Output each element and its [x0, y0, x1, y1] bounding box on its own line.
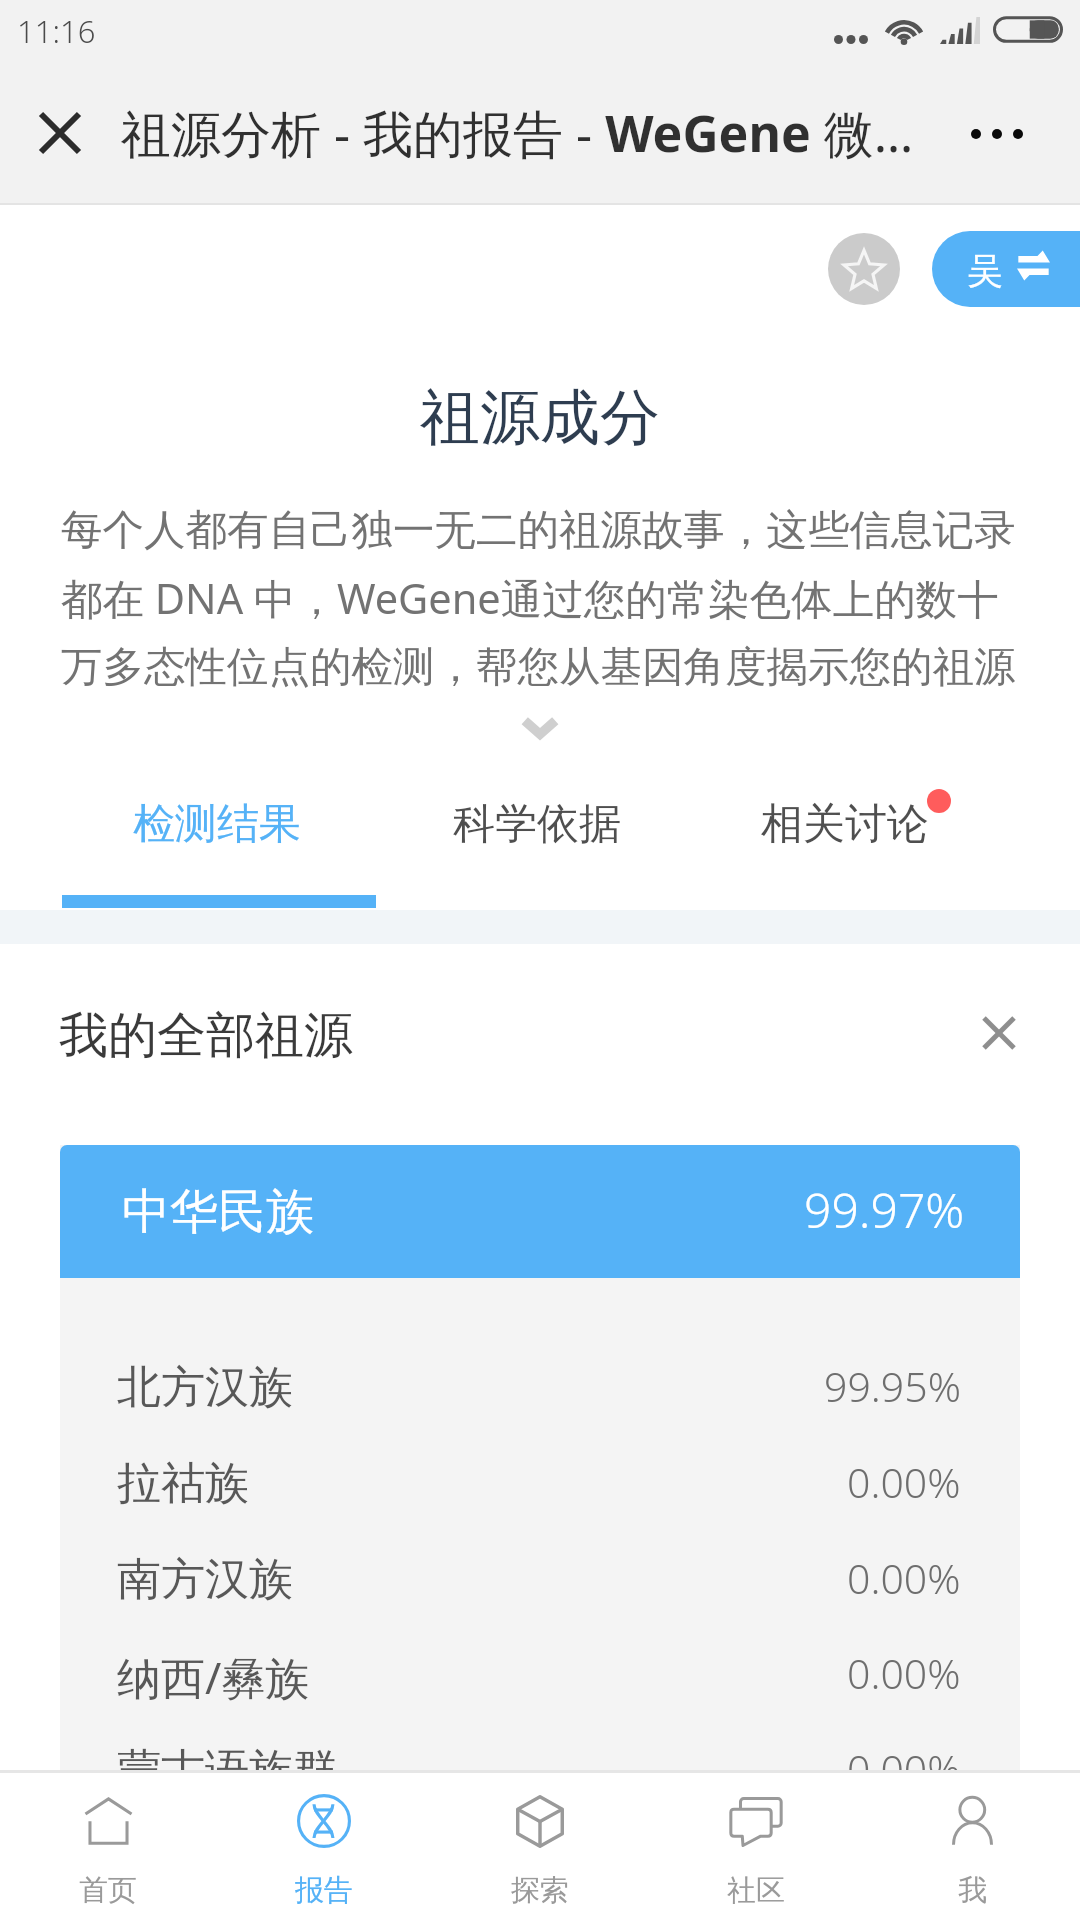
- button[interactable]: 检测结果: [92, 770, 342, 880]
- staticText: 相关讨论: [761, 798, 929, 851]
- button[interactable]: Close: [20, 93, 100, 173]
- button[interactable]: 纳西/彝族: [60, 1625, 1020, 1720]
- staticText: 检测结果: [133, 798, 301, 851]
- staticText: 我的全部祖源: [59, 1005, 353, 1067]
- button[interactable]: 吴: [932, 231, 1080, 307]
- staticText: 99.95%: [824, 1358, 961, 1414]
- staticText: 我: [958, 1872, 987, 1909]
- button[interactable]: Close panel: [954, 988, 1044, 1078]
- button[interactable]: 相关讨论: [720, 770, 970, 880]
- staticText: 纳西/彝族: [117, 1647, 310, 1707]
- staticText: 0.00%: [847, 1550, 961, 1606]
- button[interactable]: 蒙古语族群: [60, 1721, 1020, 1816]
- button[interactable]: 南方汉族: [60, 1530, 1020, 1625]
- staticText: 蒙古语族群: [117, 1743, 337, 1798]
- staticText: 11:16: [17, 10, 96, 52]
- button[interactable]: Favorite: [828, 233, 900, 305]
- staticText: 拉祜族: [117, 1456, 249, 1511]
- button[interactable]: 科学依据: [412, 770, 662, 880]
- button[interactable]: 拉祜族: [60, 1434, 1020, 1529]
- button[interactable]: 我: [864, 1770, 1080, 1920]
- button[interactable]: 探索: [432, 1770, 648, 1920]
- staticText: 探索: [511, 1872, 569, 1909]
- staticText: 0.00%: [847, 1454, 961, 1510]
- button[interactable]: 报告: [216, 1770, 432, 1920]
- staticText: 科学依据: [453, 798, 621, 851]
- staticText: 吴: [967, 248, 1003, 293]
- button[interactable]: Expand description: [490, 695, 590, 759]
- staticText: 0.00%: [847, 1645, 961, 1701]
- staticText: 祖源分析 - 我的报告 - WeGene 微…: [121, 99, 914, 167]
- staticText: 报告: [295, 1872, 353, 1909]
- staticText: 中华民族: [122, 1182, 314, 1242]
- staticText: 北方汉族: [117, 1360, 293, 1415]
- staticText: 99.97%: [804, 1177, 965, 1242]
- button[interactable]: 首页: [0, 1770, 216, 1920]
- staticText: 社区: [727, 1872, 785, 1909]
- staticText: 每个人都有自己独一无二的祖源故事，这些信息记录都在 DNA 中，WeGene通过…: [61, 504, 1023, 693]
- staticText: 0.00%: [847, 1741, 961, 1797]
- button[interactable]: 社区: [648, 1770, 864, 1920]
- staticText: 祖源成分: [420, 380, 660, 456]
- button[interactable]: 中华民族: [60, 1145, 1020, 1278]
- staticText: 南方汉族: [117, 1552, 293, 1607]
- button[interactable]: More options: [952, 89, 1042, 179]
- staticText: 首页: [79, 1872, 137, 1909]
- button[interactable]: 北方汉族: [60, 1338, 1020, 1433]
